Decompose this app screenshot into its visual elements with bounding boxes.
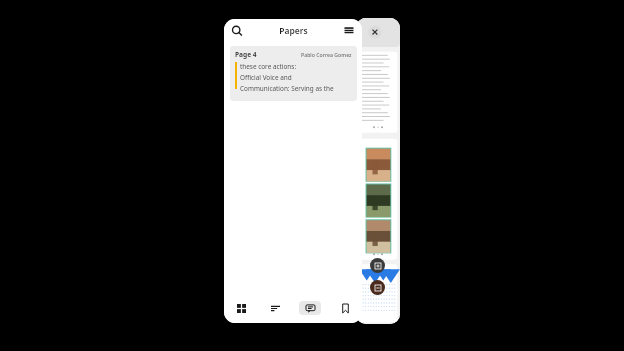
staticText: Official Voice and [240, 73, 292, 82]
button[interactable]: Search [229, 23, 245, 39]
button[interactable]: Add [370, 258, 385, 273]
staticText: Page 4 [235, 50, 257, 59]
button[interactable]: Notes [299, 301, 321, 315]
button[interactable]: Remove [370, 280, 385, 295]
button[interactable]: Library [230, 301, 252, 315]
button[interactable]: Menu [341, 23, 357, 39]
staticText: Communication: Serving as the [240, 84, 334, 93]
button[interactable]: Sort [264, 301, 286, 315]
button[interactable]: Page 4 [230, 46, 357, 101]
button[interactable]: Bookmarks [334, 301, 356, 315]
staticText: these core actions: [240, 62, 297, 71]
staticText: Papers [279, 25, 308, 37]
staticText: Pablo Correa Gomez [301, 51, 352, 58]
